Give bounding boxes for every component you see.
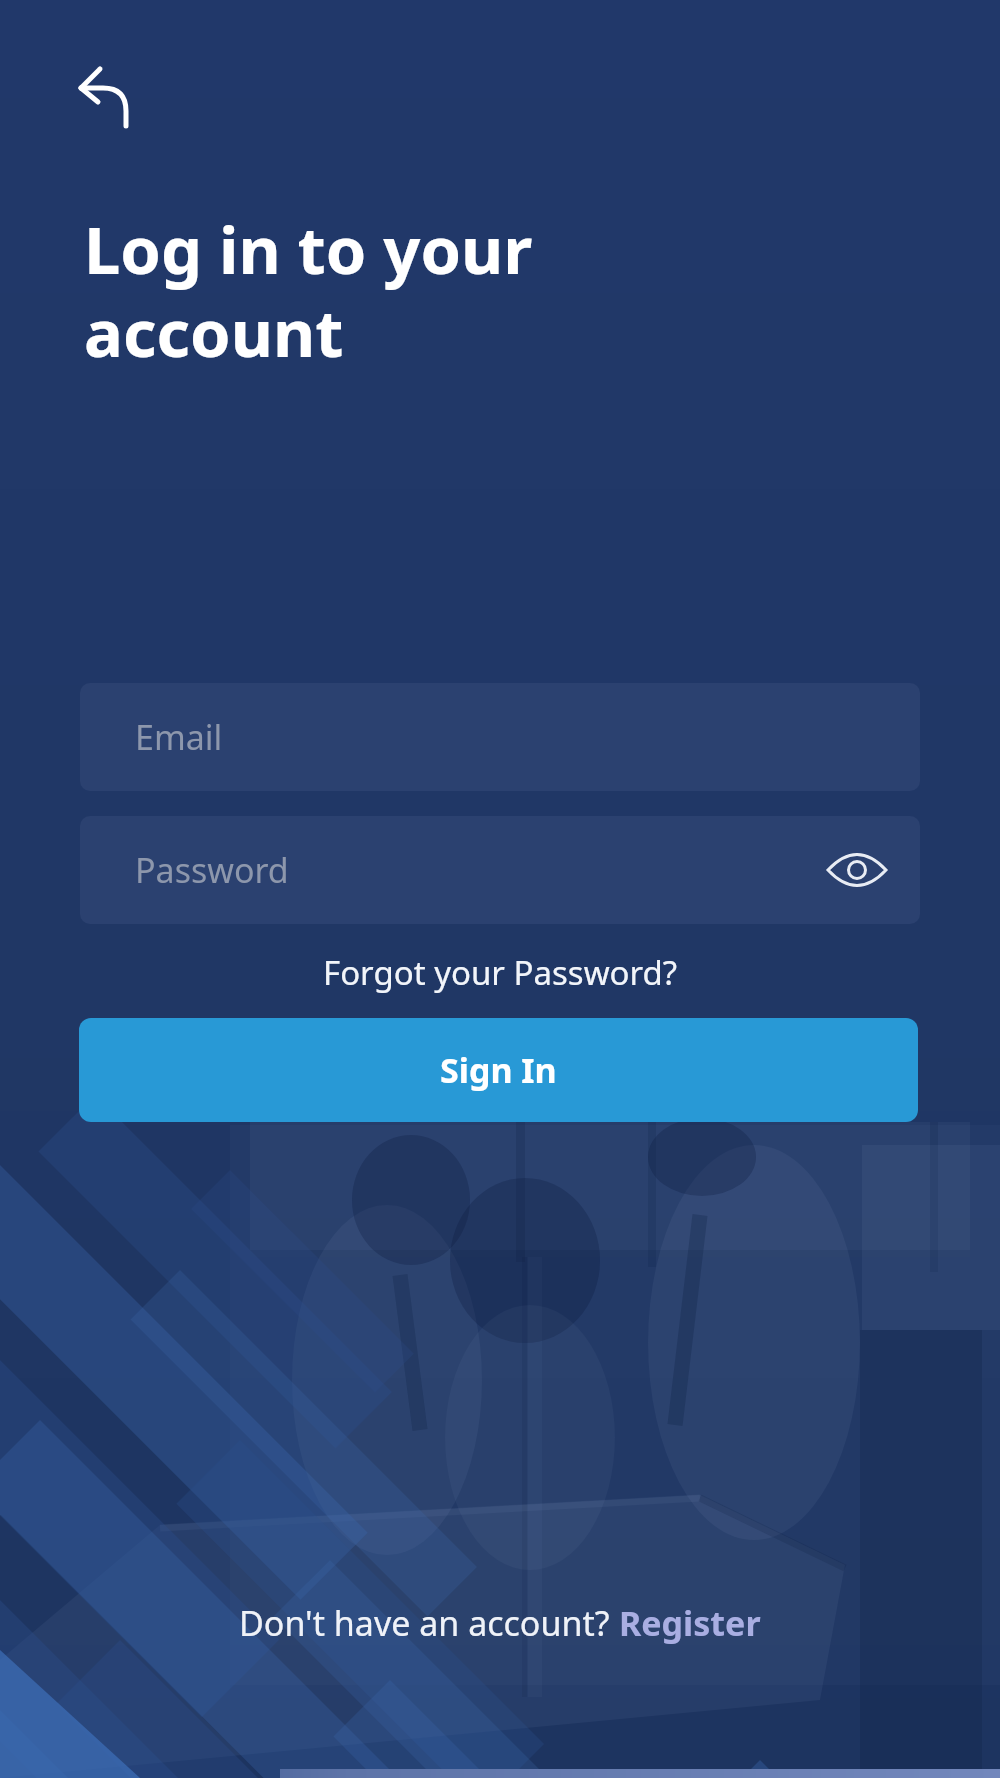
staticText: Sign In (440, 1047, 557, 1093)
staticText: Register (619, 1600, 761, 1646)
staticText: Log in to your account (84, 205, 533, 376)
button[interactable]: Sign In (79, 1018, 918, 1122)
button[interactable]: Forgot your Password? (323, 950, 678, 995)
staticText: Password (135, 847, 289, 893)
button[interactable] (58, 48, 134, 134)
staticText: Email (135, 714, 223, 760)
staticText: Forgot your Password? (323, 950, 678, 995)
button[interactable]: Email (80, 683, 920, 791)
staticText: Don't have an account? (239, 1600, 619, 1646)
button[interactable]: Password (80, 816, 920, 924)
button[interactable]: Register (619, 1600, 761, 1646)
